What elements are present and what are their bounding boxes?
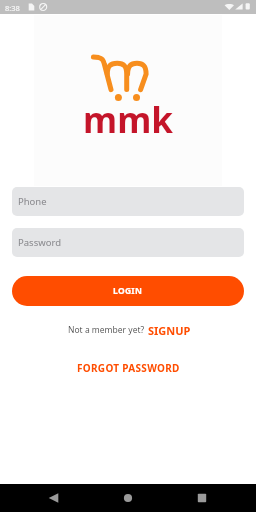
staticText: SIGNUP [148, 323, 191, 338]
button[interactable]: Phone [12, 187, 244, 216]
button[interactable]: SIGNUP [148, 323, 191, 338]
staticText: FORGOT PASSWORD [77, 361, 180, 375]
button[interactable]: Password [12, 228, 244, 257]
button[interactable]: LOGIN [12, 276, 244, 306]
staticText: mmk [83, 96, 173, 144]
staticText: LOGIN [113, 285, 143, 297]
button[interactable]: Recent apps [129, 484, 169, 512]
button[interactable]: Back [33, 484, 73, 512]
staticText: 8:38 [5, 3, 20, 13]
staticText: Not a member yet? [68, 324, 145, 336]
staticText: Password [18, 236, 61, 249]
button[interactable]: FORGOT PASSWORD [71, 358, 186, 378]
staticText: Phone [18, 195, 47, 208]
